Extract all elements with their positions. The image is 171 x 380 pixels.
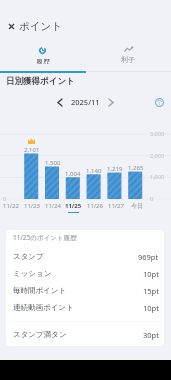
staticText: ミッション — [13, 269, 52, 278]
staticText: 1,140 — [86, 167, 102, 175]
button[interactable]: 11/24 — [42, 202, 63, 213]
staticText: スタンプ — [13, 252, 44, 261]
button[interactable]: スタンプ満タン — [6, 326, 164, 343]
button[interactable]: ミッション — [6, 265, 164, 282]
staticText: 11/24 — [45, 202, 61, 210]
button[interactable]: 毎時間ポイント — [6, 282, 164, 299]
staticText: 1,500 — [45, 159, 61, 167]
staticText: 11/23 — [24, 202, 40, 210]
button[interactable]: 連続動画ポイント — [6, 299, 164, 316]
staticText: 11/25のポイント履歴 — [13, 233, 77, 242]
staticText: 11/26 — [87, 202, 103, 210]
button[interactable]: Next month — [104, 95, 118, 109]
staticText: 11/27 — [108, 202, 124, 210]
button[interactable]: Help — [151, 94, 167, 110]
staticText: 連続動画ポイント — [13, 303, 74, 312]
staticText: 1,219 — [107, 165, 123, 173]
button[interactable]: 今日 — [126, 202, 147, 213]
button[interactable]: Close — [2, 17, 20, 35]
staticText: 15pt — [143, 286, 159, 296]
staticText: 11/25 — [65, 202, 82, 210]
staticText: 毎時間ポイント — [13, 286, 67, 295]
staticText: 969pt — [138, 252, 159, 262]
button[interactable]: 11/25 — [63, 202, 84, 213]
button[interactable]: 11/22 — [0, 202, 21, 213]
staticText: 3,000 — [150, 130, 165, 137]
staticText: 2,000 — [150, 152, 165, 159]
button[interactable]: スタンプ — [6, 248, 164, 265]
staticText: 利子 — [121, 55, 135, 64]
staticText: 10pt — [143, 269, 159, 279]
staticText: スタンプ満タン — [13, 330, 67, 339]
button[interactable]: 11/27 — [105, 202, 126, 213]
staticText: 10pt — [143, 303, 159, 313]
staticText: 履歴 — [36, 57, 50, 64]
staticText: 11/22 — [3, 202, 19, 210]
button[interactable]: Previous month — [53, 95, 67, 109]
button[interactable]: 利子 — [85, 42, 171, 64]
staticText: 日別獲得ポイント — [6, 76, 75, 87]
staticText: 1,000 — [150, 173, 165, 180]
staticText: 2,101 — [24, 146, 40, 154]
staticText: 0 — [150, 195, 154, 202]
staticText: 今日 — [131, 202, 143, 210]
staticText: 2025/11 — [71, 97, 100, 107]
button[interactable]: 11/23 — [21, 202, 42, 213]
button[interactable]: 11/26 — [84, 202, 105, 213]
staticText: 1,004 — [65, 170, 81, 178]
button[interactable]: 履歴 — [0, 42, 85, 64]
staticText: 30pt — [143, 330, 159, 340]
staticText: ポイント — [19, 20, 62, 33]
staticText: 0 — [3, 195, 7, 202]
staticText: 1,265 — [128, 164, 144, 172]
